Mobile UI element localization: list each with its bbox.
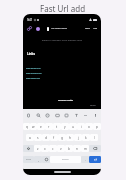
button[interactable]: y — [61, 123, 69, 130]
button[interactable]: x — [41, 145, 49, 152]
staticText: j — [78, 136, 79, 140]
button[interactable]: a — [26, 134, 34, 141]
staticText: h — [69, 136, 71, 140]
button[interactable]: i — [77, 123, 85, 130]
button[interactable]: m — [81, 145, 89, 152]
staticText: ?123 — [26, 158, 31, 161]
staticText: r — [48, 125, 50, 129]
staticText: p — [96, 125, 98, 129]
staticText: y — [64, 125, 66, 129]
button[interactable]: Emoji — [42, 156, 50, 163]
staticText: No Saved Items — [51, 27, 68, 30]
button[interactable]: Enter — [89, 156, 101, 163]
button[interactable]: Shift — [23, 145, 34, 152]
staticText: f — [53, 136, 55, 140]
button[interactable]: z — [34, 145, 41, 152]
staticText: Saved — [90, 104, 96, 107]
button[interactable]: s — [34, 134, 42, 141]
staticText: t — [56, 125, 58, 129]
staticText: k — [85, 136, 87, 140]
staticText: www.netflix.com — [26, 77, 41, 79]
button[interactable]: j — [74, 134, 82, 141]
button[interactable]: Sticker — [64, 113, 69, 118]
button[interactable]: n — [73, 145, 81, 152]
staticText: Fast Url add — [40, 3, 86, 14]
button[interactable]: l — [90, 134, 98, 141]
button[interactable]: Colour — [36, 27, 40, 31]
staticText: , — [38, 158, 39, 162]
staticText: v — [60, 147, 62, 151]
staticText: s — [37, 136, 39, 140]
staticText: b — [68, 147, 70, 151]
button[interactable]: ?123 — [23, 156, 34, 163]
button[interactable]: q — [23, 123, 30, 130]
staticText: Choose Date — [58, 98, 73, 101]
staticText: d — [45, 136, 47, 140]
button[interactable]: More options — [83, 113, 88, 118]
staticText: a — [29, 136, 31, 140]
staticText: z — [37, 147, 39, 151]
button[interactable]: e — [37, 123, 45, 130]
button[interactable]: d — [42, 134, 50, 141]
button[interactable]: www.netflix.com — [26, 77, 41, 82]
staticText: u — [72, 125, 74, 129]
button[interactable]: h — [66, 134, 74, 141]
button[interactable]: Links — [27, 52, 35, 56]
button[interactable]: Emoji — [45, 113, 50, 118]
staticText: www.youtube.com — [26, 72, 42, 74]
staticText: q — [26, 125, 28, 129]
button[interactable]: o — [85, 123, 93, 130]
button[interactable]: w — [30, 123, 37, 130]
button[interactable]: t — [53, 123, 61, 130]
button[interactable]: r — [45, 123, 53, 130]
staticText: o — [88, 125, 90, 129]
staticText: c — [52, 147, 54, 151]
staticText: 9:41 — [27, 18, 33, 22]
staticText: Edited 12 February 2023 Tuesday 23:50 — [42, 39, 83, 42]
button[interactable]: Link — [27, 26, 32, 31]
button[interactable]: Saved — [90, 104, 96, 107]
staticText: Dark — [85, 27, 90, 30]
button[interactable]: www.youtube.com — [26, 72, 42, 77]
staticText: . — [85, 158, 86, 162]
staticText: l — [94, 136, 95, 140]
staticText: e — [40, 125, 42, 129]
button[interactable]: Backspace — [89, 145, 101, 152]
staticText: x — [44, 147, 46, 151]
staticText: m — [84, 147, 87, 151]
button[interactable]: v — [57, 145, 65, 152]
button[interactable]: www.google.com — [26, 67, 41, 72]
button[interactable]: GIF — [55, 113, 60, 118]
button[interactable]: f — [50, 134, 58, 141]
staticText: g — [61, 136, 63, 140]
staticText: w — [32, 125, 35, 129]
button[interactable]: b — [65, 145, 73, 152]
button[interactable]: Clipboard — [26, 113, 31, 118]
button[interactable]: g — [58, 134, 66, 141]
staticText: Links — [27, 52, 35, 56]
staticText: English — [62, 158, 69, 161]
button[interactable]: u — [69, 123, 77, 130]
staticText: Add — [93, 27, 98, 30]
staticText: www.google.com — [26, 67, 41, 69]
button[interactable]: , — [34, 156, 42, 163]
button[interactable]: Space — [50, 156, 81, 163]
button[interactable]: p — [93, 123, 101, 130]
button[interactable]: Translate — [74, 113, 79, 118]
button[interactable]: Voice input — [93, 113, 98, 118]
button[interactable]: Search — [36, 113, 41, 118]
staticText: i — [81, 125, 82, 129]
staticText: n — [76, 147, 78, 151]
button[interactable]: k — [82, 134, 90, 141]
button[interactable]: c — [49, 145, 57, 152]
